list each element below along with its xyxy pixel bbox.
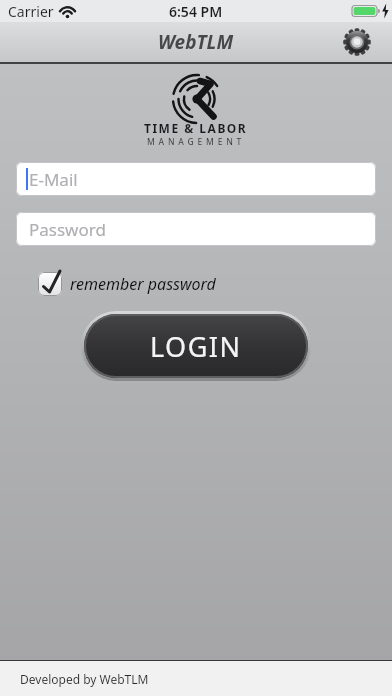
button[interactable]: remember password	[38, 272, 392, 296]
staticText: Developed by WebTLM	[20, 671, 149, 687]
button[interactable]: E-Mail	[16, 162, 376, 196]
staticText: E-Mail	[29, 168, 78, 191]
button[interactable]	[342, 27, 372, 57]
staticText: Password	[29, 218, 106, 241]
staticText: 6:54 PM	[169, 2, 223, 21]
staticText: WebTLM	[158, 29, 234, 55]
button[interactable]: LOGIN	[81, 311, 311, 381]
staticText: LOGIN	[150, 328, 242, 365]
staticText: remember password	[70, 273, 216, 295]
staticText: TIME & LABOR	[144, 120, 248, 136]
staticText: Carrier	[8, 2, 54, 21]
button[interactable]: Password	[16, 212, 376, 246]
staticText: MANAGEMENT	[147, 136, 246, 148]
